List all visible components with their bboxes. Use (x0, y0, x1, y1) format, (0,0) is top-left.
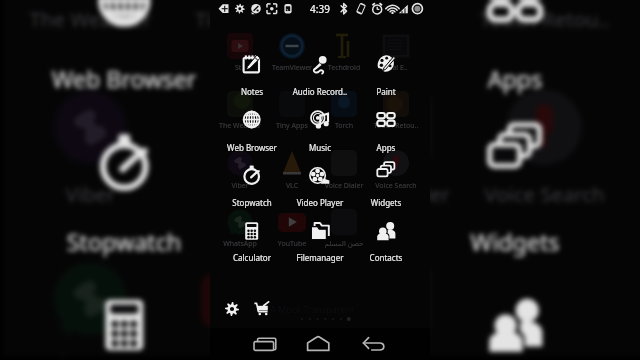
staticText: Paint (416, 0, 614, 30)
staticText: TeamViewer (262, 63, 322, 360)
button[interactable]: Widgets (416, 113, 614, 241)
staticText: حصن المسلم (314, 239, 374, 360)
button[interactable]: Calculator (218, 213, 286, 257)
staticText: Torch (306, 5, 481, 360)
staticText: Paint (352, 86, 420, 130)
staticText: Techdroid (306, 0, 481, 360)
button[interactable]: Stopwatch (218, 158, 286, 202)
staticText: Notes (218, 86, 286, 130)
staticText: Web Browser (218, 142, 286, 186)
staticText: Music (224, 63, 422, 191)
staticText: WhatsApp (210, 239, 270, 360)
staticText: The Weather (3, 5, 178, 360)
staticText: Apps (416, 63, 614, 191)
staticText: Audio Record.. (286, 86, 354, 130)
button[interactable]: Paint (352, 46, 420, 90)
button[interactable]: Contacts (416, 273, 614, 360)
staticText: Video Player (286, 197, 354, 241)
button[interactable]: Back (360, 332, 396, 356)
staticText: The Weather (210, 121, 270, 360)
staticText: YouTube (154, 348, 329, 360)
staticText: Apps (352, 142, 420, 186)
staticText: 4:39 (309, 2, 331, 360)
button[interactable]: Widgets (352, 158, 420, 202)
staticText: Viber (210, 181, 270, 360)
staticText: Techdroid (314, 63, 374, 360)
staticText: VLC (154, 180, 329, 360)
staticText: Viber (3, 180, 178, 360)
button[interactable]: Music (286, 102, 354, 146)
button[interactable]: Contacts (352, 213, 420, 257)
staticText: Tiny Apps (154, 5, 329, 360)
staticText: ..nal E.. (366, 63, 426, 360)
staticText: TeamViewer (154, 0, 329, 360)
staticText: Voice Search (366, 181, 426, 360)
staticText: Filemanager (286, 252, 354, 296)
button[interactable]: Video Player (286, 158, 354, 202)
staticText: Voice Dialer (306, 180, 481, 360)
staticText: St.. (210, 63, 270, 360)
staticText: YouTube (262, 239, 322, 360)
button[interactable]: Calculator (25, 273, 223, 360)
staticText: Video Player (224, 226, 422, 354)
button[interactable]: Stopwatch (25, 113, 223, 241)
staticText: ..nal E.. (457, 0, 632, 360)
staticText: Touch Retou.. (457, 5, 632, 360)
button[interactable]: Apps (352, 102, 420, 146)
button[interactable]: Web Browser (25, 0, 223, 76)
staticText: St.. (3, 0, 178, 360)
staticText: Stopwatch (25, 226, 223, 354)
button[interactable]: Apps (416, 0, 614, 76)
button[interactable]: Notes (218, 46, 286, 90)
staticText: حصن المسلم (306, 348, 481, 360)
staticText: VLC (262, 181, 322, 360)
staticText: Contacts (352, 252, 420, 296)
button[interactable]: Music (224, 0, 422, 76)
button[interactable]: Home (304, 332, 340, 356)
button[interactable]: Filemanager (286, 213, 354, 257)
staticText: Audio Record.. (224, 0, 422, 30)
staticText: Calculator (218, 252, 286, 296)
button[interactable]: Settings (222, 299, 242, 319)
staticText: Web Browser (25, 63, 223, 191)
staticText: WhatsApp (3, 348, 178, 360)
staticText: Voice Search (457, 180, 632, 360)
button[interactable]: Recent apps (248, 332, 284, 356)
staticText: Torch (314, 121, 374, 360)
staticText: Notes (25, 0, 223, 30)
button[interactable]: Filemanager (224, 273, 422, 360)
staticText: Widgets (416, 226, 614, 354)
button[interactable]: Web Browser (218, 102, 286, 146)
button[interactable]: Audio Record.. (286, 46, 354, 90)
staticText: Stopwatch (218, 197, 286, 241)
staticText: Voice Dialer (314, 181, 374, 360)
staticText: Widgets (352, 197, 420, 241)
staticText: Tiny Apps (262, 121, 322, 360)
button[interactable]: Store (252, 299, 272, 319)
button[interactable]: Video Player (224, 113, 422, 241)
staticText: Touch Retou.. (366, 121, 426, 360)
staticText: Music (286, 142, 354, 186)
